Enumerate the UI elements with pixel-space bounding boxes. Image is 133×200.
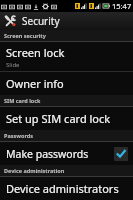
button[interactable]: Set up SIM card lock	[0, 107, 133, 130]
staticText: Screen security	[4, 32, 46, 39]
staticText: Set up SIM card lock	[6, 111, 111, 126]
button[interactable]: Security	[0, 12, 133, 30]
staticText: Make passwords visible	[6, 147, 114, 161]
button[interactable]: Make passwords visible, checked	[114, 147, 128, 161]
staticText: Device administration	[4, 167, 65, 174]
button[interactable]: Device administrators	[0, 177, 133, 200]
button[interactable]: Screen lock	[0, 42, 133, 71]
button[interactable]: Make passwords visible	[0, 142, 133, 165]
staticText: 15:47	[112, 1, 132, 11]
staticText: Passwords	[4, 132, 33, 139]
staticText: Security	[22, 14, 60, 28]
staticText: Screen lock	[6, 45, 65, 60]
staticText: Slide	[6, 61, 20, 69]
staticText: Device administrators	[6, 181, 119, 196]
staticText: SIM card lock	[4, 97, 41, 104]
button[interactable]: Owner info	[0, 72, 133, 95]
staticText: Owner info	[6, 76, 64, 91]
